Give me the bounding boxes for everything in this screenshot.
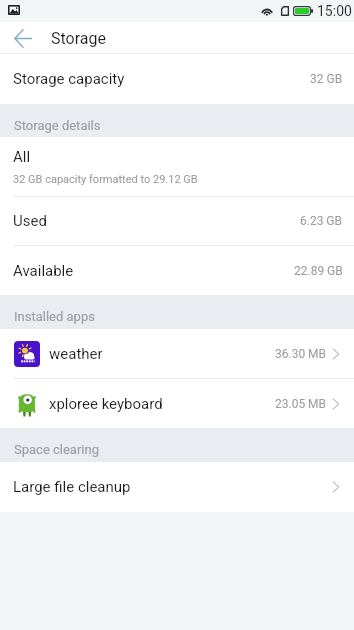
- staticText: weather: [49, 345, 103, 363]
- button[interactable]: Used: [0, 197, 354, 245]
- button[interactable]: Large file cleanup: [0, 462, 354, 512]
- staticText: 6.23 GB: [300, 214, 343, 228]
- button[interactable]: weather: [0, 329, 354, 378]
- staticText: Storage capacity: [13, 70, 125, 88]
- staticText: 32 GB capacity formatted to 29.12 GB: [13, 173, 198, 186]
- staticText: Space clearing: [14, 442, 99, 457]
- button[interactable]: xploree keyboard: [0, 379, 354, 428]
- staticText: All: [13, 148, 31, 166]
- staticText: Installed apps: [14, 309, 95, 324]
- staticText: 22.89 GB: [294, 264, 343, 278]
- staticText: Available: [13, 262, 74, 280]
- staticText: Used: [13, 212, 47, 230]
- button[interactable]: Back: [0, 22, 45, 53]
- staticText: Storage details: [14, 118, 101, 133]
- staticText: xploree keyboard: [49, 395, 163, 413]
- staticText: 32 GB: [310, 72, 343, 86]
- staticText: 23.05 MB: [275, 397, 327, 411]
- staticText: 15:00: [317, 3, 352, 19]
- button[interactable]: All: [0, 137, 354, 196]
- staticText: Large file cleanup: [13, 478, 131, 496]
- button[interactable]: Available: [0, 246, 354, 295]
- staticText: 36.30 MB: [275, 347, 327, 361]
- button[interactable]: Storage capacity: [0, 54, 354, 104]
- staticText: Storage: [51, 29, 106, 48]
